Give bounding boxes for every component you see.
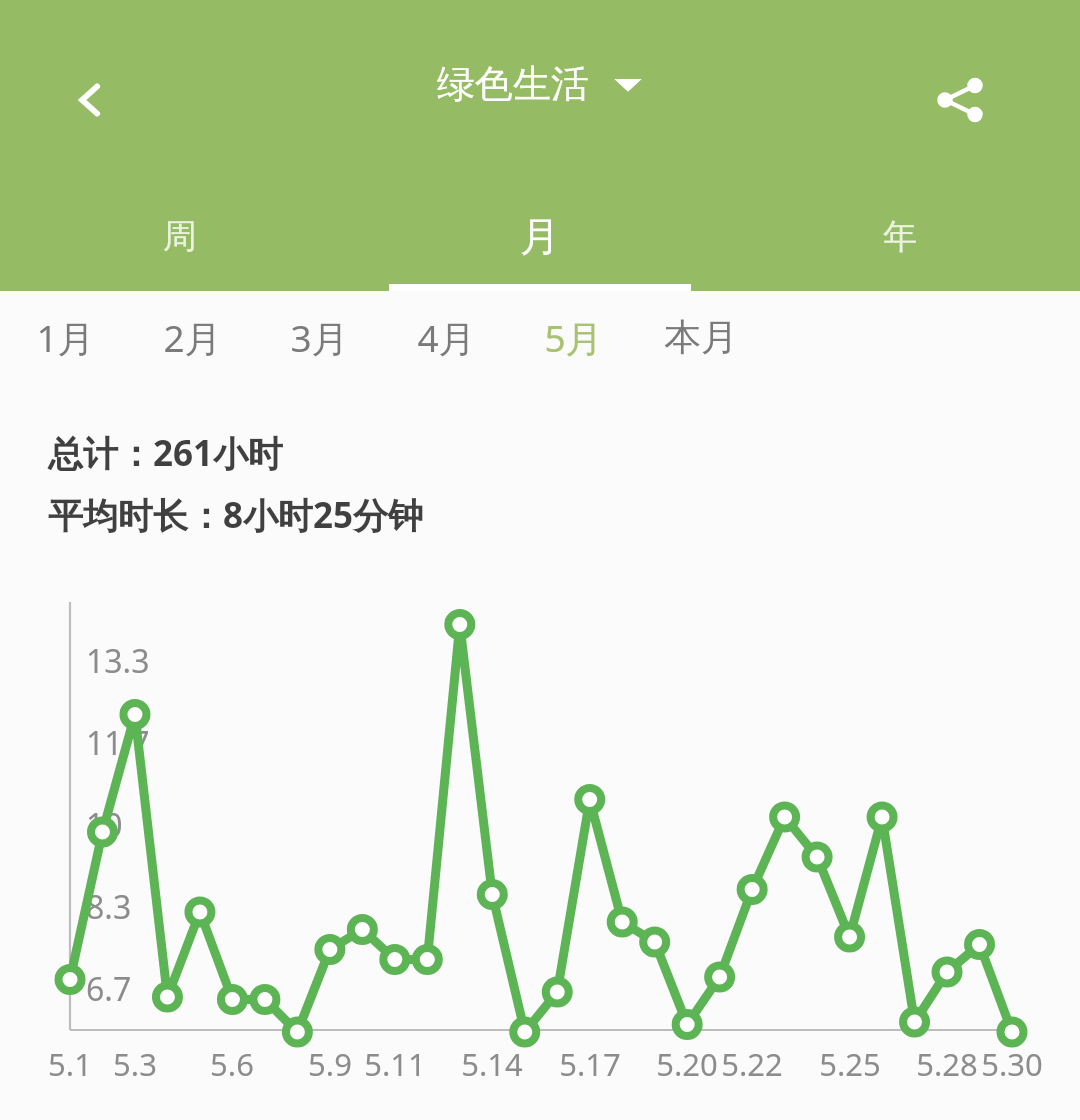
button[interactable]: 绿色生活: [437, 60, 643, 108]
staticText: 5月: [544, 312, 603, 363]
staticText: 5.25: [819, 1043, 881, 1085]
staticText: 5.28: [916, 1043, 978, 1085]
staticText: 总计：261小时: [48, 429, 284, 477]
button[interactable]: 5月: [510, 291, 637, 383]
staticText: 4月: [417, 312, 476, 363]
staticText: 5.22: [721, 1043, 783, 1085]
button[interactable]: 4月: [383, 291, 510, 383]
staticText: 5.20: [656, 1043, 718, 1085]
button[interactable]: Back: [48, 58, 132, 142]
staticText: 5.6: [210, 1043, 254, 1085]
staticText: 10: [86, 803, 123, 847]
staticText: 8.3: [86, 885, 132, 929]
staticText: 5.30: [981, 1043, 1043, 1085]
button[interactable]: 月: [360, 181, 720, 291]
staticText: 5.17: [559, 1043, 621, 1085]
staticText: 2月: [163, 312, 222, 363]
button[interactable]: 1月: [2, 291, 129, 383]
staticText: 本月: [664, 314, 738, 361]
staticText: 13.3: [86, 639, 150, 683]
staticText: 5.14: [461, 1043, 523, 1085]
staticText: 5.3: [113, 1043, 157, 1085]
button[interactable]: Share: [912, 52, 1008, 148]
staticText: 周: [163, 215, 197, 258]
staticText: 5.1: [48, 1043, 92, 1085]
staticText: 3月: [290, 312, 349, 363]
staticText: 绿色生活: [437, 60, 589, 108]
button[interactable]: 年: [720, 181, 1080, 291]
staticText: 平均时长：8小时25分钟: [48, 491, 424, 539]
staticText: 月: [520, 211, 560, 261]
staticText: 年: [883, 215, 917, 258]
button[interactable]: 3月: [256, 291, 383, 383]
button[interactable]: 周: [0, 181, 360, 291]
button[interactable]: 本月: [637, 291, 764, 383]
button[interactable]: 2月: [129, 291, 256, 383]
staticText: 6.7: [86, 967, 132, 1011]
staticText: 5.11: [364, 1043, 426, 1085]
staticText: 1月: [36, 312, 95, 363]
staticText: 5.9: [308, 1043, 352, 1085]
staticText: 11.7: [86, 721, 150, 765]
